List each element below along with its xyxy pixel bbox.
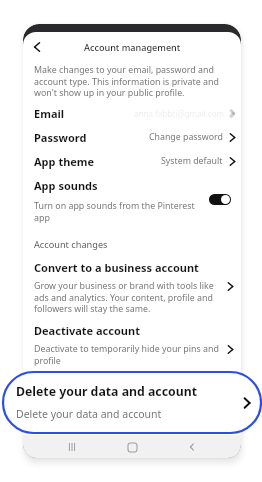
button[interactable]: Back (181, 436, 203, 458)
button[interactable]: Recent apps (61, 436, 83, 458)
staticText: Account changes (34, 238, 108, 251)
button[interactable]: App theme (34, 150, 238, 172)
staticText: Make changes to your email, password and… (34, 64, 219, 98)
button[interactable]: App sounds (34, 178, 238, 220)
staticText: System default (161, 155, 223, 167)
staticText: Grow your business or brand with tools l… (34, 280, 214, 314)
staticText: Turn on app sounds from the Pinterest ap… (34, 200, 195, 223)
button[interactable]: App sounds toggle (209, 194, 231, 205)
staticText: Deactivate to temporarily hide your pins… (34, 343, 219, 366)
button[interactable]: Email (34, 102, 238, 124)
staticText: Email (34, 106, 65, 121)
button[interactable]: Back (27, 37, 47, 57)
button[interactable]: Password (34, 126, 238, 148)
button[interactable]: Deactivate account (34, 323, 238, 368)
staticText: Delete your data and account (16, 383, 198, 400)
staticText: Convert to a business account (34, 260, 199, 275)
button[interactable]: Delete your data and account (3, 372, 261, 433)
staticText: Delete your data and account (16, 407, 162, 421)
button[interactable]: Home (121, 436, 143, 458)
staticText: App sounds (34, 178, 98, 193)
staticText: Account management (84, 41, 181, 53)
staticText: Password (34, 130, 87, 145)
staticText: anna.fabbri@gmail.com (134, 108, 224, 119)
staticText: Deactivate account (34, 323, 140, 338)
staticText: Change password (149, 131, 223, 143)
staticText: App theme (34, 154, 95, 169)
button[interactable]: Convert to a business account (34, 260, 238, 315)
